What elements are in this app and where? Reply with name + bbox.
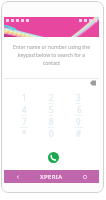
staticText: 7 <box>22 116 27 127</box>
button[interactable]: * <box>11 128 38 140</box>
button[interactable]: Back <box>4 170 32 183</box>
staticText: JKL <box>49 115 54 116</box>
staticText: 3 <box>76 92 81 103</box>
staticText: 2 <box>49 92 54 103</box>
staticText: # <box>76 128 82 139</box>
staticText: 6 <box>77 104 82 115</box>
staticText: 1 <box>22 92 27 103</box>
staticText: Enter name or number using the keypad be… <box>12 44 91 67</box>
button[interactable]: 9 <box>65 116 92 128</box>
staticText: XPERIA <box>40 173 63 181</box>
button[interactable]: 3 <box>65 92 92 104</box>
button[interactable]: 2 <box>38 92 65 104</box>
staticText: 0 <box>49 128 54 139</box>
button[interactable]: Call <box>48 152 59 163</box>
button[interactable]: 8 <box>38 116 65 128</box>
button[interactable]: Recent apps <box>71 170 99 183</box>
button[interactable]: Backspace <box>86 76 99 89</box>
button[interactable]: 6 <box>65 104 92 116</box>
staticText: DEF <box>75 103 82 104</box>
button[interactable]: 7 <box>11 116 38 128</box>
button[interactable]: # <box>65 128 92 140</box>
button[interactable]: 0 <box>38 128 65 140</box>
staticText: 9 <box>76 116 81 127</box>
staticText: TUV <box>48 127 55 128</box>
button[interactable]: 1 <box>11 92 38 104</box>
button[interactable]: 4 <box>11 104 38 116</box>
staticText: PQRS <box>20 127 29 128</box>
button[interactable]: XPERIA <box>32 170 71 183</box>
staticText: MNO <box>75 115 83 116</box>
button[interactable]: 5 <box>38 104 65 116</box>
staticText: 8 <box>49 116 54 127</box>
staticText: 5 <box>49 104 54 115</box>
staticText: ABC <box>48 103 55 104</box>
staticText: * <box>22 128 27 139</box>
staticText: GHI <box>21 115 28 116</box>
staticText: 4 <box>22 104 27 115</box>
